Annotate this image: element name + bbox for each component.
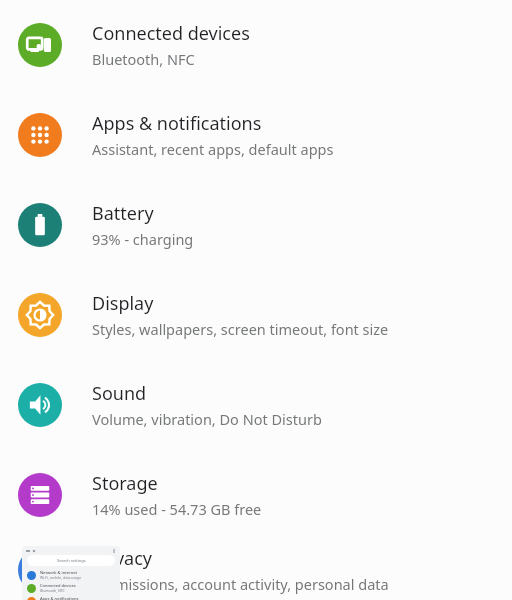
staticText: Sound	[92, 381, 147, 406]
staticText: Search settings	[57, 558, 86, 563]
staticText: Privacy	[92, 546, 153, 571]
staticText: Styles, wallpapers, screen timeout, font…	[92, 319, 389, 339]
staticText: Bluetooth, NFC	[40, 588, 65, 593]
staticText: Storage	[92, 471, 158, 496]
staticText: Network & internet	[40, 570, 78, 575]
button[interactable]: Screenshot preview	[22, 546, 120, 600]
staticText: Apps & notifications	[92, 111, 262, 136]
staticText: Assistant, recent apps, default apps	[92, 139, 334, 159]
staticText: Battery	[92, 201, 154, 226]
button[interactable]: Battery	[0, 180, 512, 270]
staticText: Connected devices	[40, 583, 76, 588]
staticText: Bluetooth, NFC	[92, 49, 195, 69]
staticText: Apps & notifications	[40, 596, 79, 600]
button[interactable]: Privacy	[0, 540, 512, 600]
staticText: 93% - charging	[92, 229, 194, 249]
staticText: Connected devices	[92, 21, 250, 46]
staticText: Permissions, account activity, personal …	[92, 574, 389, 594]
button[interactable]: Connected devices	[0, 0, 512, 90]
button[interactable]: Storage	[0, 450, 512, 540]
staticText: Display	[92, 291, 154, 316]
staticText: Volume, vibration, Do Not Disturb	[92, 409, 322, 429]
button[interactable]: Display	[0, 270, 512, 360]
staticText: 14% used - 54.73 GB free	[92, 499, 262, 519]
staticText: Wi-Fi, mobile, data usage	[40, 575, 82, 580]
button[interactable]: Sound	[0, 360, 512, 450]
button[interactable]: Apps & notifications	[0, 90, 512, 180]
